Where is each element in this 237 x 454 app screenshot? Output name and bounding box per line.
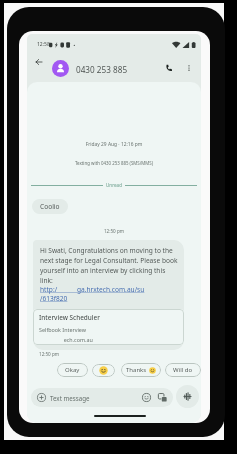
staticText: Texting with 0430 253 885 (SMS/MMS) — [27, 160, 201, 166]
staticText: Text message — [50, 394, 90, 402]
button[interactable]: Hi Swati, Congratulations on moving to t… — [33, 240, 184, 350]
staticText: Unread — [106, 182, 122, 188]
button[interactable]: More options — [180, 59, 198, 77]
button[interactable]: Thanks — [121, 363, 161, 377]
staticText: http:/ ga.hrxtech.com.au/su — [40, 285, 145, 294]
staticText: 12:50 pm — [27, 228, 201, 234]
staticText: Coolio — [40, 202, 60, 211]
button[interactable]: Back — [30, 53, 48, 71]
staticText: ech.com.au — [39, 336, 93, 343]
button[interactable]: Voice message — [176, 385, 199, 408]
button[interactable]: Interview Scheduler — [33, 309, 184, 345]
button[interactable]: Text message — [31, 388, 173, 407]
staticText: Thanks — [126, 366, 147, 374]
button[interactable]: Will do — [165, 363, 201, 377]
button[interactable]: Okay — [57, 363, 88, 377]
staticText: 0430 253 885 — [76, 64, 128, 75]
staticText: 12:58 — [37, 41, 50, 48]
staticText: Friday 29 Aug · 12:16 pm — [27, 141, 201, 148]
staticText: /613f820 — [40, 294, 68, 303]
staticText: Hi Swati, Congratulations on moving to t… — [40, 246, 179, 285]
button[interactable]: Emoji reply — [92, 364, 115, 377]
staticText: 12:50 pm — [39, 351, 60, 357]
button[interactable]: Call — [160, 59, 178, 77]
staticText: Selfbook Interview — [39, 326, 87, 333]
staticText: Interview Scheduler — [39, 313, 100, 322]
staticText: Okay — [65, 366, 80, 374]
staticText: Will do — [173, 366, 193, 374]
button[interactable]: Coolio — [32, 199, 68, 214]
